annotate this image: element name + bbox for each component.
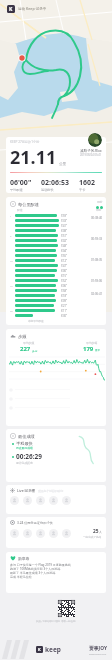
staticText: 半程最快 <box>16 441 33 446</box>
staticText: 25 <box>93 528 99 535</box>
staticText: 5'55" <box>61 254 68 258</box>
staticText: 贾事JOY <box>89 645 107 652</box>
staticText: 人 <box>99 530 102 534</box>
staticText: 227 <box>20 345 31 353</box>
staticText: 01:59:06 <box>91 279 103 283</box>
staticText: 6'11" <box>61 309 68 313</box>
staticText: 179 <box>83 345 94 353</box>
staticText: 用时 <box>97 200 103 204</box>
staticText: 2019/05/24 05:41 <box>80 153 102 157</box>
staticText: 00:26:29 <box>16 452 42 461</box>
staticText: 平均步幅 <box>86 341 98 345</box>
staticText: 06'00" <box>10 178 32 188</box>
staticText: 累计完成距离 <box>16 461 33 465</box>
staticText: 减脂子的思xx <box>80 148 102 153</box>
staticText: 02:06:41 <box>91 292 103 296</box>
staticText: 步/分 <box>32 349 38 352</box>
staticText: www.ezjoy.com <box>89 652 107 655</box>
staticText: 1602 <box>79 178 96 188</box>
staticText: 6'30" <box>61 314 68 318</box>
staticText: 6'09" <box>61 299 68 303</box>
staticText: 本期平均配速 <box>28 319 44 322</box>
staticText: 6'21" <box>61 304 68 308</box>
staticText: 6'12" <box>61 259 68 263</box>
staticText: 6'00" <box>61 269 68 273</box>
staticText: Live 回放图 <box>17 488 36 493</box>
staticText: KEEP 27#运动·1小时 <box>10 140 40 144</box>
staticText: 每公里配速 <box>18 202 39 207</box>
staticText: 平均步频 <box>23 341 35 345</box>
staticText: 00:38:40 <box>91 216 103 220</box>
staticText: 重温每个精彩的瞬间 <box>38 489 64 493</box>
staticText: 6'08" <box>61 229 68 233</box>
staticText: 21.11 <box>10 145 57 170</box>
staticText: 配速 <box>17 208 23 212</box>
staticText: 刷新了 半马最佳成绩 3个人的祝福 <box>10 571 56 575</box>
staticText: 运动 Keep 记录中 <box>18 6 47 11</box>
staticText: 6'06" <box>61 284 68 288</box>
staticText: 02:06:53 <box>41 178 69 188</box>
staticText: 千卡 <box>79 188 86 192</box>
staticText: 参与 口子快乐每一个·Flag 2019 月度跑量挑战 <box>10 563 71 567</box>
staticText: 10 <box>10 259 13 262</box>
staticText: 6'02" <box>61 239 68 243</box>
staticText: 一起完成了挑战 <box>83 535 102 538</box>
staticText: 6'04" <box>61 249 68 253</box>
staticText: 3.24 位同学见证你的小伙 <box>17 521 53 525</box>
staticText: 厘米 <box>95 349 100 352</box>
staticText: 平均配速 <box>10 188 23 192</box>
staticText: 5'52" <box>61 279 68 283</box>
staticText: 公里 <box>59 162 67 167</box>
staticText: 20 <box>10 309 13 312</box>
staticText: 5'48" <box>61 244 68 248</box>
button[interactable]: Keep <box>7 5 15 13</box>
staticText: 5 <box>10 234 12 237</box>
staticText: 步频 <box>18 334 27 339</box>
staticText: 5'59" <box>61 214 68 218</box>
staticText: K <box>38 647 41 652</box>
staticText: 完成 半程马拉松 <box>10 575 32 579</box>
staticText: 运动时长 <box>41 188 54 192</box>
staticText: 5'33" <box>61 219 68 223</box>
staticText: 00:59:33 <box>91 237 103 241</box>
staticText: 5'51" <box>61 234 68 238</box>
staticText: 5'47" <box>61 264 68 268</box>
staticText: 历史最好成绩 <box>16 446 33 450</box>
staticText: 6'15" <box>61 274 68 278</box>
staticText: 15 <box>10 284 13 287</box>
button[interactable]: Live 回放图 <box>6 485 106 508</box>
staticText: keep <box>45 645 61 654</box>
staticText: 最佳成绩 <box>18 434 35 439</box>
staticText: 5'58" <box>61 289 68 293</box>
staticText: 6'18" <box>61 294 68 298</box>
staticText: 01:08:35 <box>91 258 103 262</box>
staticText: 勋章墙 <box>18 556 30 561</box>
staticText: 用时 <box>96 208 102 212</box>
staticText: K <box>9 6 13 13</box>
staticText: 5'41" <box>61 224 68 228</box>
staticText: 1 <box>10 214 12 217</box>
staticText: 长按／扫码识别二维码 看看一起去跑 <box>36 619 76 622</box>
staticText: 跑进了 10KM挑战俱乐部 3个人的祝福 <box>10 567 61 571</box>
